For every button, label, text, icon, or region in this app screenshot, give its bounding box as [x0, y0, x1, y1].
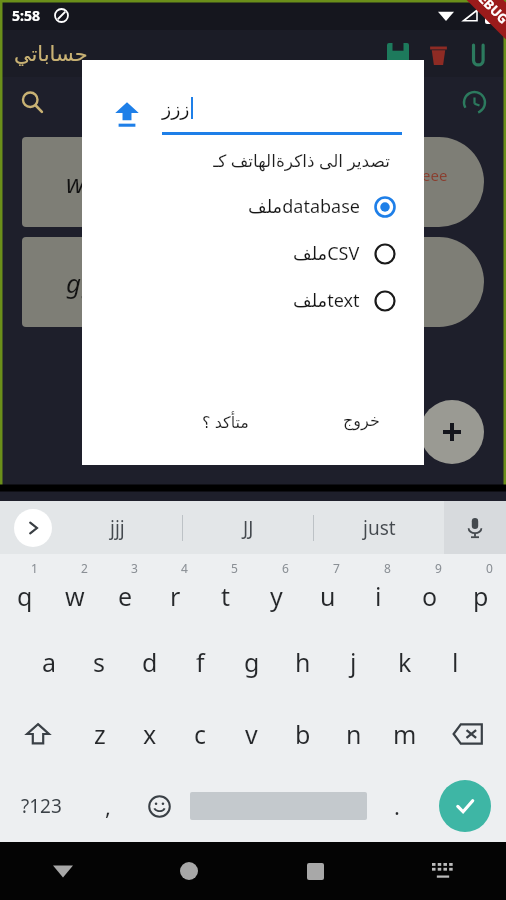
button[interactable]: Export — [110, 97, 144, 131]
button[interactable]: Save — [378, 34, 418, 74]
button[interactable]: a — [24, 626, 74, 698]
button[interactable]: ?123 — [0, 770, 82, 842]
staticText: keee — [414, 165, 448, 185]
staticText: b — [295, 717, 311, 751]
button[interactable]: خروج — [329, 405, 394, 436]
staticText: z — [94, 717, 106, 751]
staticText: 6 — [282, 560, 289, 576]
button[interactable]: jjj — [52, 501, 182, 554]
staticText: , — [105, 791, 111, 821]
staticText: i — [375, 579, 382, 613]
staticText: c — [194, 717, 207, 751]
button[interactable]: 0 — [455, 554, 506, 626]
staticText: s — [93, 645, 105, 679]
button[interactable]: l — [430, 626, 481, 698]
button[interactable]: m — [379, 698, 430, 770]
button[interactable]: Search — [12, 82, 52, 122]
staticText: خروج — [343, 411, 380, 430]
staticText: r — [170, 579, 181, 613]
staticText: n — [346, 717, 362, 751]
button[interactable]: . — [371, 770, 423, 842]
button[interactable]: z — [75, 698, 125, 770]
staticText: j — [350, 645, 357, 679]
button[interactable]: www — [22, 137, 484, 227]
button[interactable]: just — [314, 501, 444, 554]
button[interactable]: Space — [185, 770, 371, 842]
button[interactable]: v — [226, 698, 277, 770]
button[interactable]: Enter — [439, 780, 491, 832]
button[interactable]: 6 — [251, 554, 302, 626]
staticText: f — [196, 645, 205, 679]
staticText: just — [363, 515, 396, 541]
button[interactable]: h — [277, 626, 328, 698]
button[interactable]: ملفCSV — [82, 241, 424, 266]
button[interactable]: j — [328, 626, 379, 698]
button[interactable]: Attach — [458, 34, 498, 74]
button[interactable]: Backspace — [430, 698, 506, 770]
button[interactable]: Back — [0, 842, 126, 900]
staticText: v — [245, 717, 258, 751]
button[interactable]: Voice input — [444, 501, 506, 554]
button[interactable]: 4 — [150, 554, 200, 626]
button[interactable]: Home — [126, 842, 252, 900]
staticText: jjj — [110, 515, 125, 541]
staticText: k — [398, 645, 412, 679]
button[interactable]: 2 — [50, 554, 100, 626]
staticText: www — [66, 165, 123, 200]
button[interactable]: More suggestions — [14, 509, 52, 547]
staticText: JJ — [243, 515, 254, 541]
staticText: 7 — [333, 560, 340, 576]
staticText: a — [42, 645, 57, 679]
staticText: l — [452, 645, 459, 679]
button[interactable]: 7 — [302, 554, 353, 626]
staticText: 3 — [131, 560, 138, 576]
button[interactable]: Emoji — [133, 770, 185, 842]
button[interactable]: Recents — [252, 842, 379, 900]
button[interactable]: ملفtext — [82, 288, 424, 313]
button[interactable]: ggg — [22, 237, 484, 327]
staticText: u — [320, 579, 336, 613]
button[interactable]: b — [277, 698, 328, 770]
staticText: w — [65, 579, 85, 613]
staticText: ززز — [162, 97, 190, 119]
button[interactable]: متأكد ؟ — [188, 405, 263, 439]
button[interactable]: c — [175, 698, 226, 770]
button[interactable]: 3 — [100, 554, 150, 626]
button[interactable]: d — [124, 626, 175, 698]
staticText: h — [295, 645, 311, 679]
staticText: y — [270, 579, 283, 613]
staticText: d — [142, 645, 158, 679]
staticText: 1 — [31, 560, 38, 576]
button[interactable]: n — [328, 698, 379, 770]
button[interactable]: Add — [420, 400, 484, 464]
button[interactable]: Delete — [418, 34, 458, 74]
staticText: p — [473, 579, 489, 613]
staticText: ملفdatabase — [248, 194, 360, 219]
button[interactable]: s — [74, 626, 124, 698]
staticText: تصدير الى ذاكرةالهاتف كـ — [82, 149, 390, 172]
button[interactable]: k — [379, 626, 430, 698]
button[interactable]: JJ — [183, 501, 313, 554]
button[interactable]: f — [175, 626, 226, 698]
button[interactable]: 9 — [404, 554, 455, 626]
staticText: 5:58 — [12, 6, 40, 25]
staticText: ملفtext — [293, 288, 360, 313]
button[interactable]: 5 — [200, 554, 251, 626]
button[interactable]: History — [454, 82, 494, 122]
button[interactable]: , — [82, 770, 133, 842]
staticText: o — [422, 579, 438, 613]
staticText: x — [143, 717, 157, 751]
button[interactable]: ملفdatabase — [82, 194, 424, 219]
button[interactable]: g — [226, 626, 277, 698]
staticText: DEBUG — [468, 0, 506, 28]
staticText: t — [221, 579, 231, 613]
button[interactable]: Shift — [0, 698, 75, 770]
staticText: 0 — [486, 560, 493, 576]
button[interactable]: 8 — [353, 554, 404, 626]
staticText: 9 — [435, 560, 442, 576]
button[interactable]: Keyboard switcher — [379, 842, 506, 900]
staticText: 2 — [81, 560, 88, 576]
staticText: ?123 — [21, 793, 62, 819]
button[interactable]: x — [125, 698, 175, 770]
button[interactable]: 1 — [0, 554, 50, 626]
